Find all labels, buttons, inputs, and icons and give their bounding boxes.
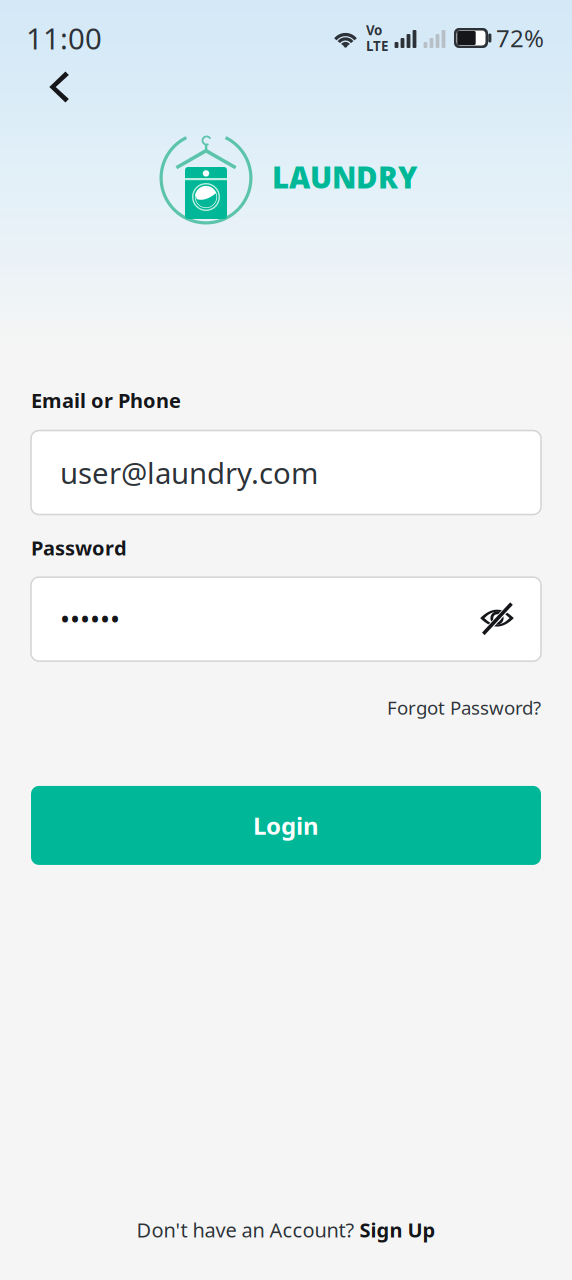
staticText: LAUNDRY [272, 157, 417, 196]
button[interactable]: Show password [479, 601, 515, 638]
staticText: Sign Up [359, 1216, 435, 1243]
staticText: Forgot Password? [387, 695, 541, 720]
button[interactable]: Don't have an Account? [31, 1216, 541, 1280]
staticText: Email or Phone [31, 387, 181, 414]
staticText: Vo [366, 21, 382, 39]
staticText: Login [253, 809, 319, 841]
staticText: 72% [496, 22, 544, 54]
staticText: 11:00 [26, 18, 102, 57]
staticText: Password [31, 535, 127, 561]
staticText: LTE [366, 37, 388, 55]
staticText: user@laundry.com [60, 453, 318, 492]
button[interactable]: Login [31, 786, 541, 865]
button[interactable]: Back [34, 65, 78, 109]
button[interactable]: Forgot Password? [31, 661, 541, 720]
staticText: •••••• [60, 601, 120, 637]
staticText: Don't have an Account? [136, 1216, 359, 1243]
